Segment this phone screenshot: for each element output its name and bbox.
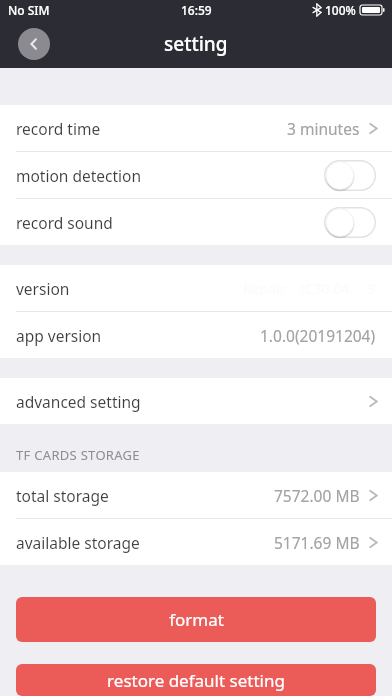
button[interactable]: record time <box>0 105 392 151</box>
staticText: TF CARDS STORAGE <box>16 446 140 464</box>
button[interactable]: record sound <box>0 199 392 245</box>
staticText: version <box>16 278 70 299</box>
staticText: 5171.69 MB <box>274 532 360 553</box>
staticText: format <box>169 608 224 631</box>
staticText: total storage <box>16 485 109 506</box>
button[interactable]: motion detection <box>0 152 392 198</box>
staticText: app version <box>16 325 102 346</box>
staticText: 7572.00 MB <box>274 485 360 506</box>
staticText: record time <box>16 118 101 139</box>
button[interactable]: total storage <box>0 472 392 518</box>
staticText: No SIM <box>8 2 50 18</box>
button[interactable]: Back <box>18 28 50 60</box>
staticText: 3 minutes <box>287 118 360 139</box>
button[interactable]: Toggle <box>324 207 376 238</box>
staticText: 1.0.0(20191204) <box>260 325 376 346</box>
staticText: setting <box>164 31 228 57</box>
staticText: 100% <box>325 2 356 18</box>
button[interactable]: version <box>0 265 392 311</box>
staticText: advanced setting <box>16 391 141 412</box>
staticText: available storage <box>16 532 140 553</box>
button[interactable]: Toggle <box>324 160 376 191</box>
button[interactable]: available storage <box>0 519 392 565</box>
staticText: 16:59 <box>181 2 212 18</box>
button[interactable]: restore default setting <box>16 664 376 696</box>
staticText: motion detection <box>16 165 142 186</box>
button[interactable]: advanced setting <box>0 378 392 424</box>
staticText: record sound <box>16 212 113 233</box>
staticText: restore default setting <box>107 669 285 692</box>
button[interactable]: app version <box>0 312 392 358</box>
button[interactable]: format <box>16 597 376 642</box>
